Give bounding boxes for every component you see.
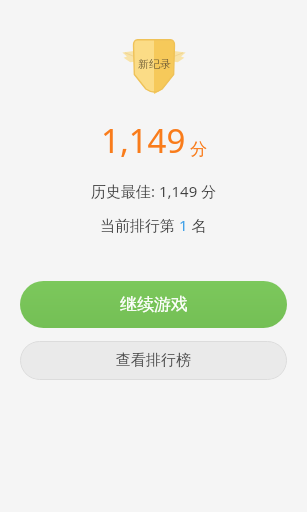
button[interactable]: 查看排行榜 (20, 341, 287, 380)
staticText: 当前排行第 1 名 (100, 215, 207, 235)
button[interactable]: 继续游戏 (20, 281, 287, 328)
staticText: 新纪录 (138, 57, 171, 71)
staticText: 历史最佳: 1,149 分 (91, 181, 217, 201)
staticText: 继续游戏 (120, 294, 188, 315)
staticText: 1,149 (101, 118, 186, 163)
staticText: 查看排行榜 (116, 351, 191, 370)
staticText: 分 (190, 139, 207, 160)
